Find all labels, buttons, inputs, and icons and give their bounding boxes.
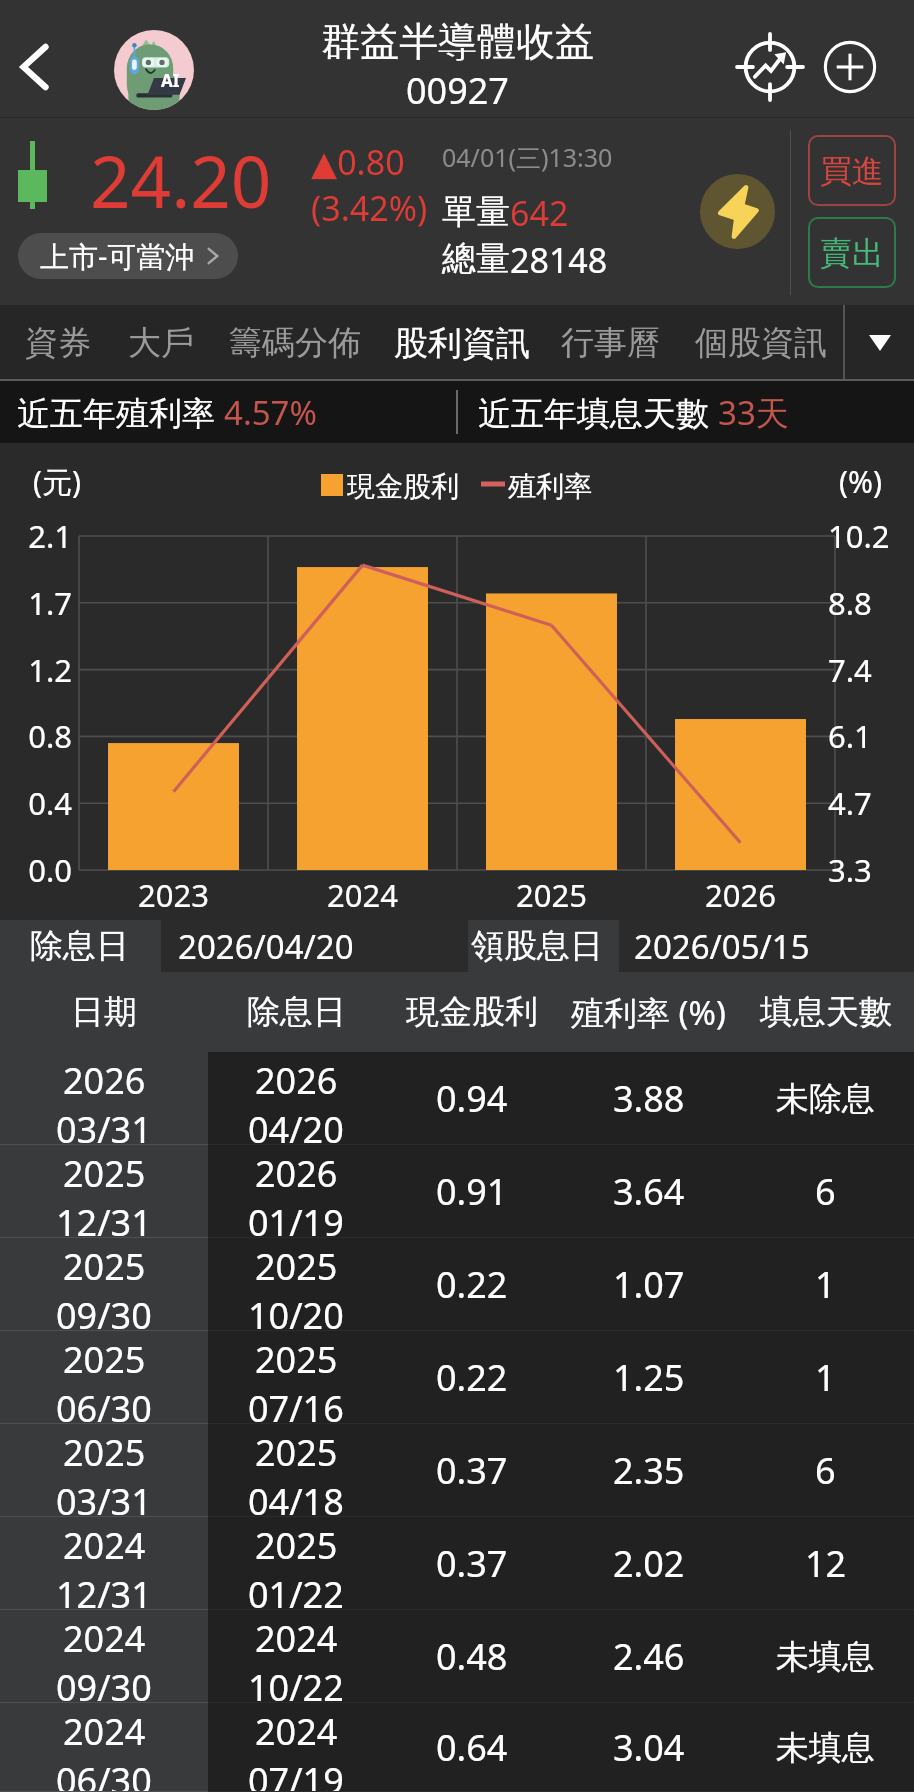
staticText: 04/01(三)13:30 xyxy=(442,140,613,174)
staticText: (3.42%) xyxy=(311,185,428,231)
staticText: 籌碼分佈 xyxy=(229,322,361,364)
staticText: 2025 xyxy=(255,1242,338,1291)
staticText: 群益半導體收益 xyxy=(321,17,594,66)
staticText: 06/30 xyxy=(56,1756,152,1792)
button[interactable]: 個股資訊 xyxy=(679,305,843,381)
button[interactable]: 2024 xyxy=(0,1517,914,1610)
staticText: 日期 xyxy=(71,991,137,1033)
staticText: 0.0 xyxy=(14,849,72,891)
button[interactable]: Quick trade xyxy=(700,174,775,249)
button[interactable]: Back xyxy=(0,32,70,102)
staticText: 8.8 xyxy=(828,582,902,624)
staticText: 03/31 xyxy=(56,1477,152,1521)
staticText: 1.07 xyxy=(613,1260,685,1309)
staticText: 4.57% xyxy=(224,390,317,435)
staticText: 0.48 xyxy=(436,1632,508,1681)
staticText: 1.7 xyxy=(14,582,72,624)
staticText: 資券 xyxy=(25,322,91,364)
staticText: 單量 xyxy=(442,190,510,233)
staticText: 7.4 xyxy=(828,649,902,691)
staticText: 2025 xyxy=(63,1335,146,1384)
staticText: 0.64 xyxy=(436,1723,508,1772)
staticText: 10/20 xyxy=(248,1291,344,1335)
staticText: 2026 xyxy=(255,1056,338,1105)
staticText: AI xyxy=(161,69,180,92)
staticText: 除息日 xyxy=(247,991,346,1033)
staticText: 0.22 xyxy=(436,1260,508,1309)
staticText: 33天 xyxy=(718,390,789,435)
staticText: 2.35 xyxy=(613,1446,685,1495)
staticText: 領股息日 xyxy=(471,925,603,967)
button[interactable]: 籌碼分佈 xyxy=(214,305,376,381)
staticText: 12/31 xyxy=(56,1198,152,1242)
button[interactable]: Add to watchlist xyxy=(815,32,885,102)
button[interactable]: 賣出 xyxy=(808,217,896,288)
button[interactable]: 股利資訊 xyxy=(379,305,545,381)
staticText: 殖利率 (%) xyxy=(571,990,726,1035)
staticText: 2025 xyxy=(63,1428,146,1477)
staticText: 10/22 xyxy=(248,1663,344,1707)
staticText: 買進 xyxy=(820,151,884,191)
staticText: 2025 xyxy=(255,1428,338,1477)
staticText: 0.22 xyxy=(436,1353,508,1402)
button[interactable]: AI assistant xyxy=(114,30,194,110)
staticText: 2024 xyxy=(255,1614,338,1663)
button[interactable]: 2025 xyxy=(0,1145,914,1238)
staticText: 2025 xyxy=(255,1521,338,1570)
staticText: 未填息 xyxy=(776,1636,875,1678)
button[interactable]: 2024 xyxy=(0,1610,914,1703)
button[interactable]: 上市-可當沖 xyxy=(18,233,238,279)
staticText: 6.1 xyxy=(828,715,902,757)
staticText: 填息天數 xyxy=(760,991,892,1033)
button[interactable]: More tabs xyxy=(845,305,914,381)
staticText: 0.4 xyxy=(14,782,72,824)
staticText: 4.7 xyxy=(828,782,902,824)
staticText: 0.8 xyxy=(14,715,72,757)
button[interactable]: 2025 xyxy=(0,1424,914,1517)
button[interactable]: 2025 xyxy=(0,1331,914,1424)
staticText: 07/19 xyxy=(248,1756,344,1792)
staticText: 股利資訊 xyxy=(394,322,530,365)
staticText: 總量 xyxy=(442,237,510,280)
staticText: 1 xyxy=(815,1260,836,1309)
staticText: 2025 xyxy=(255,1335,338,1384)
staticText: 2025 xyxy=(63,1149,146,1198)
staticText: 01/22 xyxy=(248,1570,344,1614)
staticText: 2026 xyxy=(255,1149,338,1198)
staticText: 03/31 xyxy=(56,1105,152,1149)
button[interactable]: 資券 xyxy=(9,305,106,381)
staticText: 06/30 xyxy=(56,1384,152,1428)
staticText: 上市-可當沖 xyxy=(40,236,195,276)
staticText: 12 xyxy=(805,1539,847,1588)
staticText: 04/20 xyxy=(248,1105,344,1149)
staticText: 現金股利 xyxy=(406,991,538,1033)
button[interactable]: Technical chart xyxy=(735,32,805,102)
staticText: 1.2 xyxy=(14,649,72,691)
staticText: 2026/05/15 xyxy=(634,924,810,969)
staticText: 2024 xyxy=(327,874,398,916)
staticText: 6 xyxy=(815,1446,836,1495)
staticText: 近五年填息天數 xyxy=(478,390,718,435)
staticText: 2026 xyxy=(63,1056,146,1105)
staticText: 近五年殖利率 xyxy=(17,390,224,435)
staticText: 3.3 xyxy=(828,849,902,891)
button[interactable]: 行事曆 xyxy=(545,305,676,381)
staticText: 24.20 xyxy=(90,132,272,229)
staticText: (%) xyxy=(839,461,882,502)
staticText: 00927 xyxy=(406,66,509,115)
staticText: 2025 xyxy=(63,1242,146,1291)
button[interactable]: 2024 xyxy=(0,1703,914,1792)
staticText: 2023 xyxy=(138,874,209,916)
staticText: 28148 xyxy=(510,237,608,283)
button[interactable]: 2026 xyxy=(0,1052,914,1145)
button[interactable]: 2025 xyxy=(0,1238,914,1331)
staticText: 0.94 xyxy=(436,1074,508,1123)
button[interactable]: 買進 xyxy=(808,135,896,206)
staticText: 04/18 xyxy=(248,1477,344,1521)
staticText: 賣出 xyxy=(820,233,884,273)
staticText: 0.37 xyxy=(436,1539,508,1588)
staticText: 現金股利 xyxy=(347,469,459,504)
button[interactable]: 大戶 xyxy=(117,305,205,381)
staticText: 1 xyxy=(815,1353,836,1402)
staticText: 2024 xyxy=(63,1707,146,1756)
